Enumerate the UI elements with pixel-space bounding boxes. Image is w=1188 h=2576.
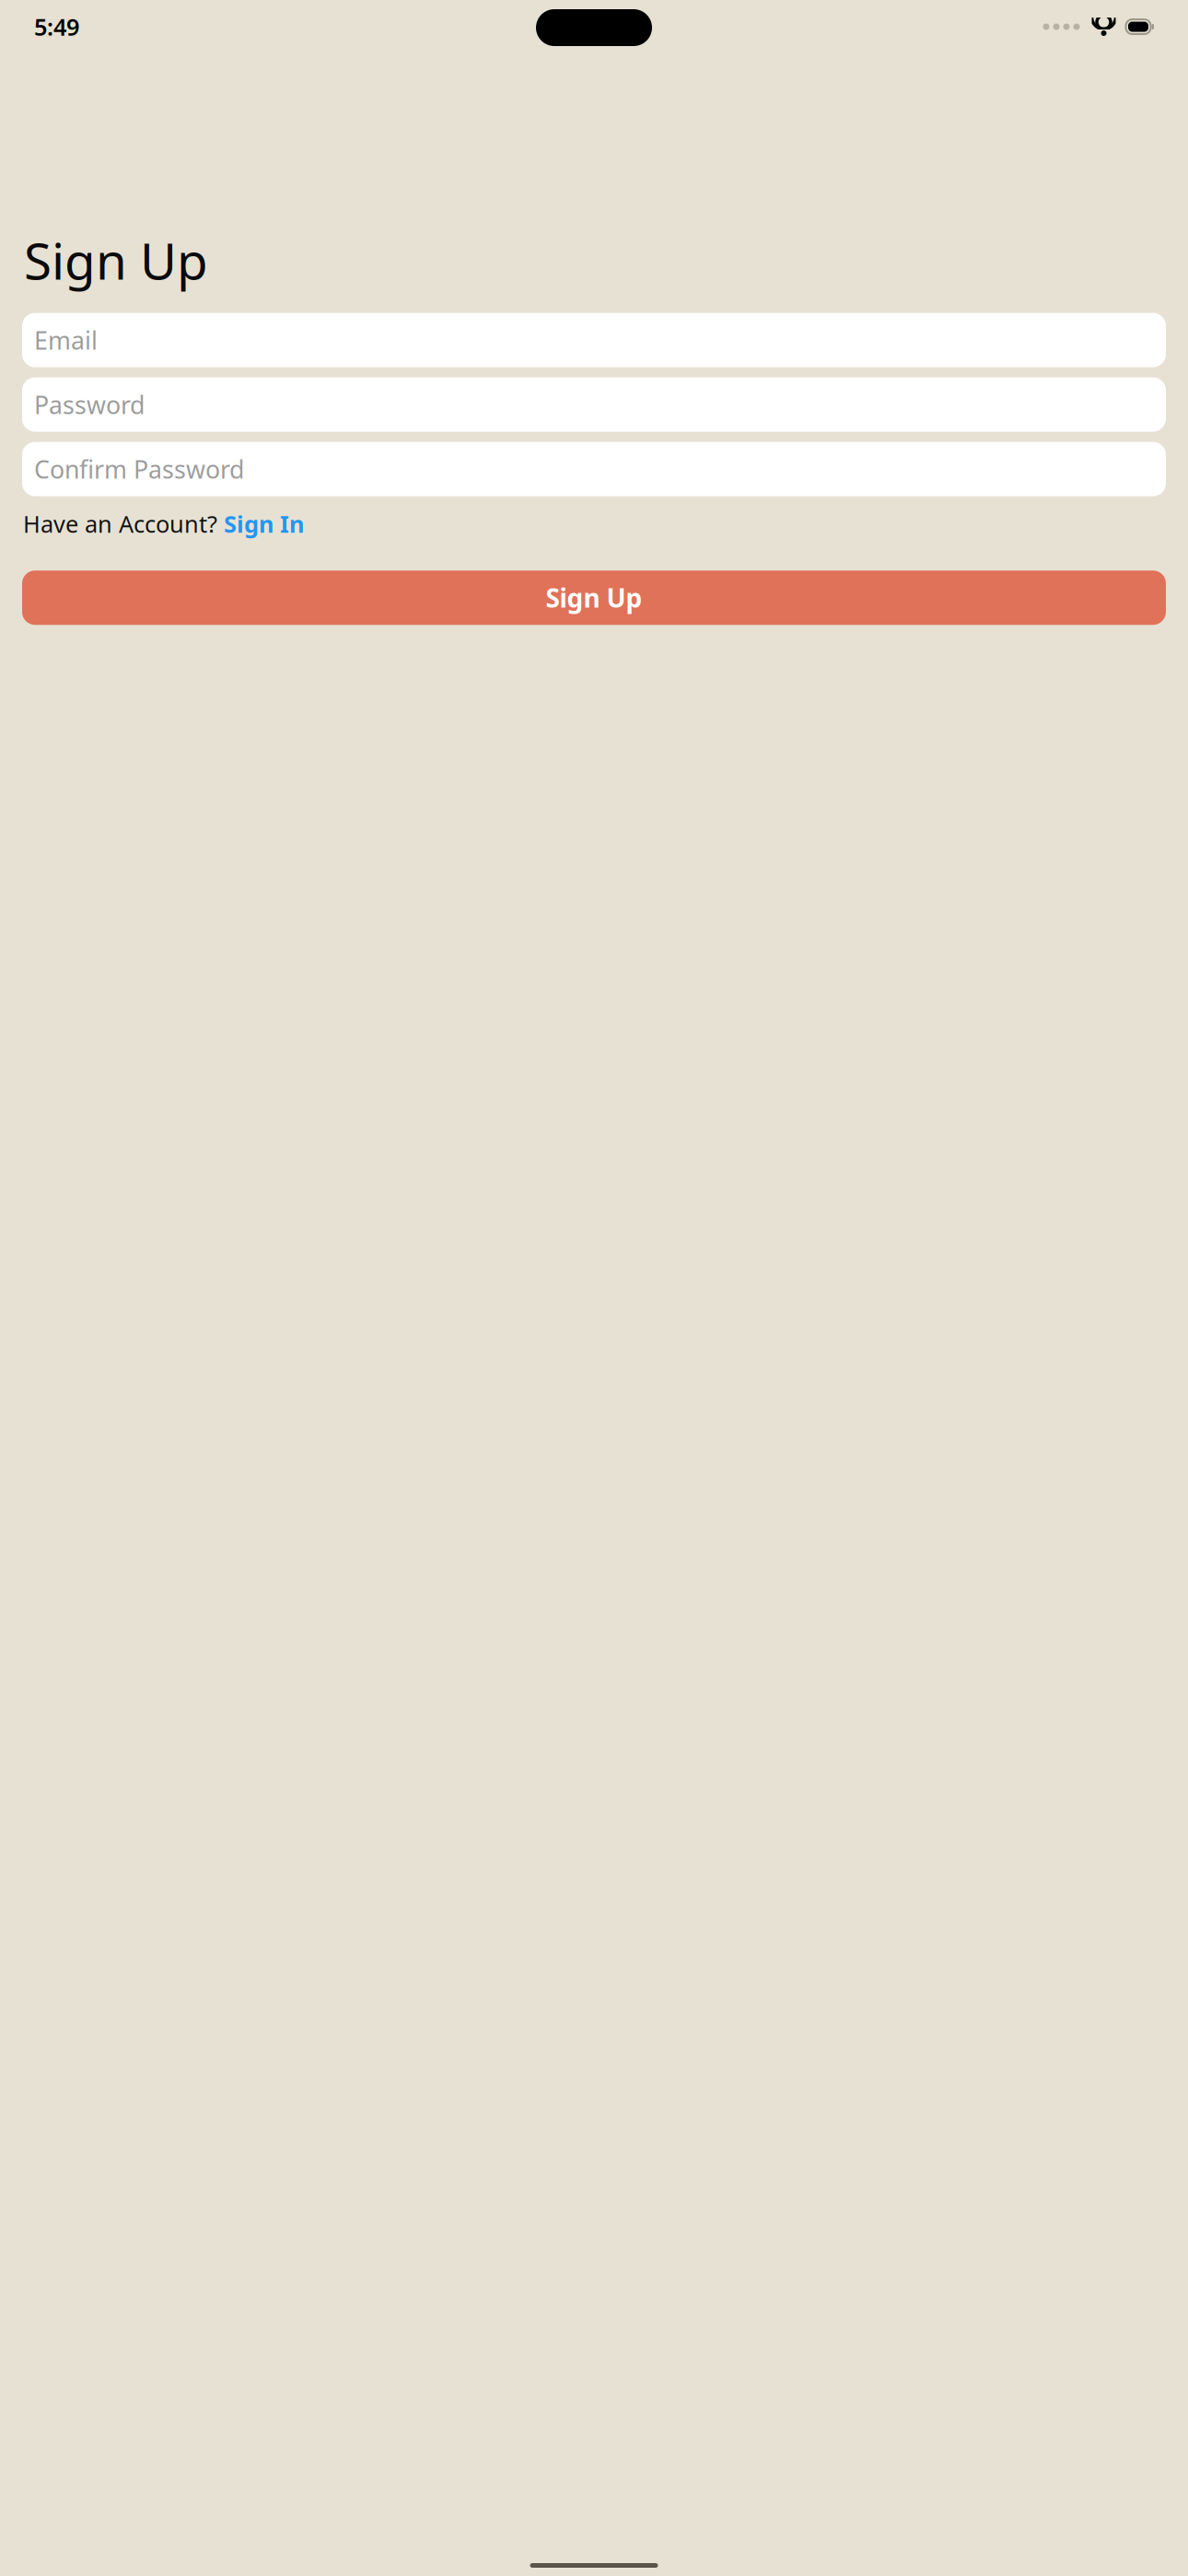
staticText: Have an Account?: [23, 508, 224, 539]
button[interactable]: Have an Account?: [22, 504, 1166, 544]
staticText: Email: [34, 324, 98, 356]
staticText: Confirm Password: [34, 453, 244, 485]
button[interactable]: Confirm Password: [22, 442, 1166, 496]
staticText: Sign In: [224, 508, 304, 539]
button[interactable]: Sign Up: [22, 570, 1166, 625]
staticText: Password: [34, 388, 145, 421]
button[interactable]: Email: [22, 313, 1166, 367]
button[interactable]: Password: [22, 377, 1166, 432]
staticText: Sign Up: [24, 227, 208, 294]
staticText: Sign Up: [546, 581, 642, 615]
staticText: 5:49: [34, 11, 79, 42]
